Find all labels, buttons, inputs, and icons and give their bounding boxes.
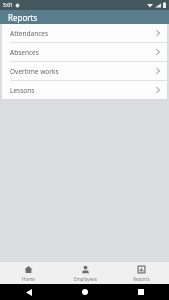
staticText: Lessons xyxy=(10,86,156,95)
staticText: Reports xyxy=(8,12,38,23)
staticText: Attendances xyxy=(10,29,156,38)
button[interactable]: Attendances xyxy=(2,24,167,42)
button[interactable]: Employees xyxy=(57,262,113,284)
button[interactable]: Back xyxy=(24,287,34,297)
staticText: 5:01 xyxy=(3,2,13,9)
button[interactable]: Absences xyxy=(2,43,167,61)
staticText: Reports xyxy=(133,276,150,282)
button[interactable]: Recent apps xyxy=(136,287,146,297)
staticText: Home xyxy=(22,276,35,282)
button[interactable]: Reports xyxy=(113,262,169,284)
button[interactable]: Home xyxy=(0,262,57,284)
button[interactable]: Overtime works xyxy=(2,62,167,80)
button[interactable]: Lessons xyxy=(2,81,167,99)
staticText: Employees xyxy=(74,276,97,282)
staticText: Absences xyxy=(10,48,156,57)
button[interactable]: Home xyxy=(80,287,90,297)
staticText: Overtime works xyxy=(10,67,156,76)
